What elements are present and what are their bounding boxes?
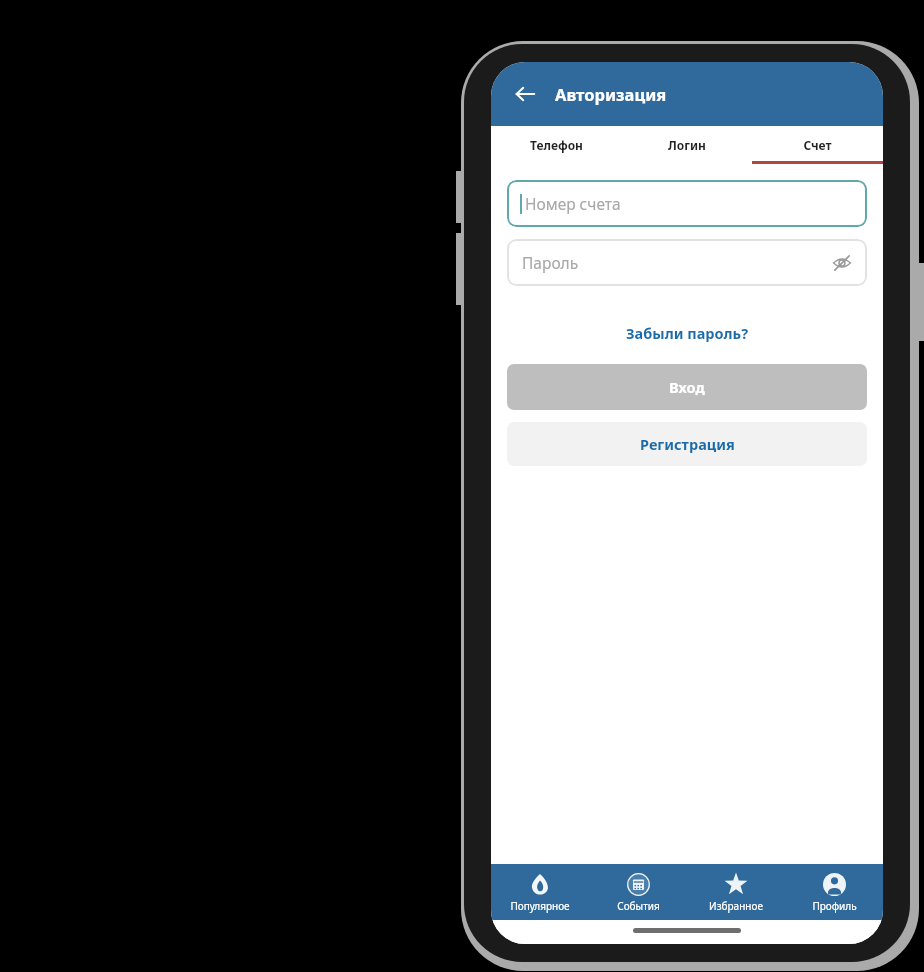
button[interactable]: Back <box>505 74 545 114</box>
button[interactable]: Забыли пароль? <box>491 316 883 350</box>
button[interactable]: Show password <box>827 248 857 278</box>
button[interactable]: Избранное <box>687 864 785 920</box>
staticText: Забыли пароль? <box>626 323 749 343</box>
staticText: Регистрация <box>640 434 735 454</box>
staticText: Логин <box>668 137 706 153</box>
button[interactable]: Счет <box>752 126 883 164</box>
staticText: Счет <box>803 137 832 153</box>
button[interactable]: Логин <box>621 126 752 164</box>
button[interactable]: Вход <box>507 364 867 410</box>
staticText: Вход <box>669 377 705 397</box>
button[interactable]: Телефон <box>491 126 621 164</box>
staticText: Избранное <box>709 899 763 913</box>
staticText: Профиль <box>812 899 857 913</box>
button[interactable]: Пароль <box>507 239 867 286</box>
staticText: Номер счета <box>525 193 621 214</box>
staticText: Телефон <box>530 137 583 153</box>
staticText: Пароль <box>522 252 827 273</box>
button[interactable]: Профиль <box>785 864 883 920</box>
button[interactable]: Регистрация <box>507 422 867 466</box>
button[interactable]: События <box>589 864 687 920</box>
button[interactable]: Номер счета <box>507 180 867 227</box>
staticText: Авторизация <box>555 83 667 105</box>
staticText: События <box>617 899 660 913</box>
staticText: Популярное <box>510 899 570 913</box>
button[interactable]: Популярное <box>491 864 589 920</box>
